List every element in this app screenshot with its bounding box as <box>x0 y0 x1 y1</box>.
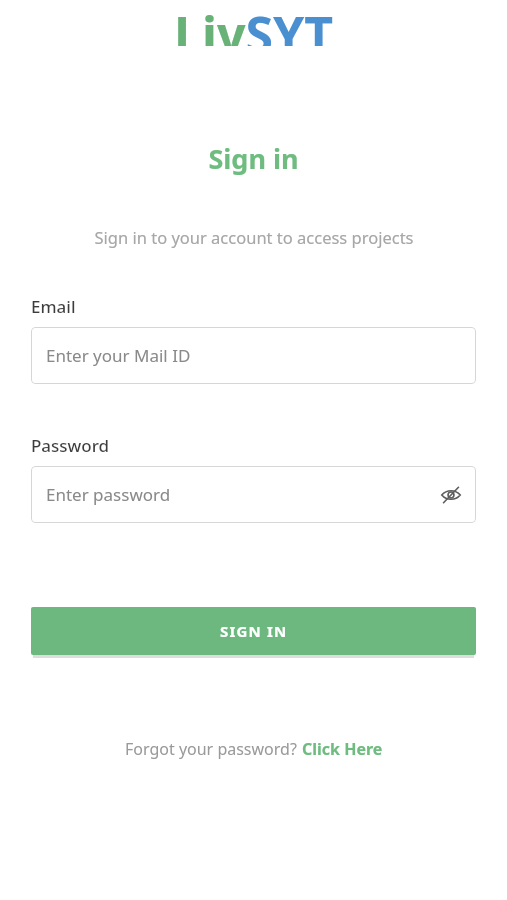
button[interactable]: Show password <box>434 478 468 512</box>
button[interactable]: Enter your Mail ID <box>31 327 476 384</box>
staticText: Sign in to your account to access projec… <box>94 226 414 248</box>
button[interactable]: Enter password <box>31 466 476 523</box>
button[interactable]: Click Here <box>302 738 383 760</box>
staticText: Sign in <box>208 140 299 177</box>
staticText: SIGN IN <box>220 621 288 641</box>
staticText: LivSYT <box>174 0 334 46</box>
staticText: Click Here <box>302 738 383 760</box>
staticText: Password <box>31 434 110 457</box>
button[interactable]: SIGN IN <box>31 607 476 655</box>
staticText: Forgot your password? <box>125 738 302 760</box>
staticText: Enter password <box>46 483 171 506</box>
staticText: Enter your Mail ID <box>46 344 191 367</box>
staticText: Email <box>31 295 76 318</box>
